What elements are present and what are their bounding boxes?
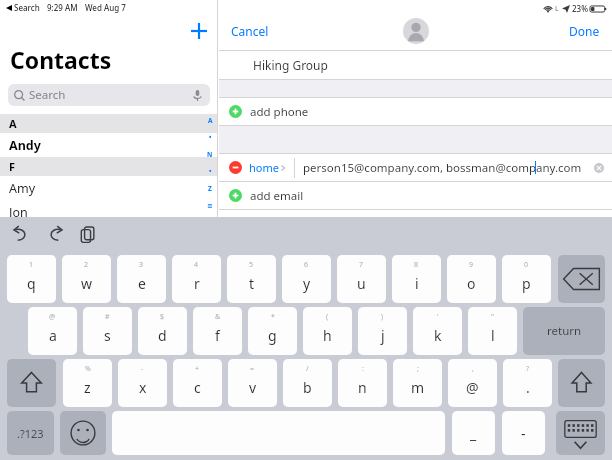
staticText: N xyxy=(207,150,213,159)
button[interactable]: _ xyxy=(452,411,495,455)
button[interactable]: 6 xyxy=(282,255,331,303)
staticText: / xyxy=(306,364,309,374)
button[interactable]: 3 xyxy=(117,255,166,303)
button[interactable]: 2 xyxy=(62,255,111,303)
button[interactable]: - xyxy=(502,411,545,455)
button[interactable]: Contact photo xyxy=(403,18,429,44)
staticText: r xyxy=(194,274,200,293)
staticText: F xyxy=(9,159,16,174)
button[interactable]: 5 xyxy=(227,255,276,303)
button[interactable]: Undo xyxy=(10,223,32,245)
staticText: p xyxy=(522,274,531,293)
button[interactable]: Shift xyxy=(558,359,605,407)
staticText: % xyxy=(85,364,91,374)
staticText: @ xyxy=(466,378,479,397)
staticText: m xyxy=(411,378,425,397)
button[interactable]: $ xyxy=(138,307,187,355)
staticText: add phone xyxy=(250,104,309,120)
staticText: ) xyxy=(381,312,384,322)
button[interactable]: / xyxy=(283,359,332,407)
staticText: - xyxy=(521,424,526,443)
button[interactable]: Done xyxy=(561,19,612,43)
button[interactable]: Cancel xyxy=(219,19,277,43)
staticText: Andy xyxy=(9,137,41,154)
button[interactable]: 4 xyxy=(172,255,221,303)
staticText: s xyxy=(104,326,111,345)
staticText: add email xyxy=(250,188,304,204)
button[interactable]: + xyxy=(173,359,222,407)
button[interactable]: Jon xyxy=(0,200,218,224)
staticText: " xyxy=(491,312,494,322)
button[interactable]: # xyxy=(83,307,132,355)
staticText: w xyxy=(81,274,93,293)
button[interactable]: * xyxy=(248,307,297,355)
button[interactable]: 0 xyxy=(502,255,551,303)
button[interactable]: : xyxy=(338,359,387,407)
staticText: 7 xyxy=(359,260,364,270)
button[interactable]: = xyxy=(228,359,277,407)
staticText: 5 xyxy=(249,260,254,270)
button[interactable]: Return xyxy=(523,307,605,355)
button[interactable]: 8 xyxy=(392,255,441,303)
button[interactable]: Redo xyxy=(44,223,66,245)
button[interactable]: & xyxy=(193,307,242,355)
button[interactable]: Amy xyxy=(0,176,218,200)
staticText: t xyxy=(249,274,255,293)
button[interactable]: ? xyxy=(503,359,552,407)
staticText: j xyxy=(381,326,385,345)
staticText: d xyxy=(158,326,167,345)
button[interactable]: Numbers xyxy=(7,411,54,455)
staticText: Search xyxy=(29,87,66,103)
button[interactable]: 9 xyxy=(447,255,496,303)
button[interactable]: Emoji xyxy=(60,411,106,455)
staticText: A xyxy=(208,116,213,125)
staticText: Hiking Group xyxy=(253,57,328,73)
staticText: Cancel xyxy=(231,23,269,39)
button[interactable]: Add contact xyxy=(186,18,212,44)
button[interactable]: @ xyxy=(28,307,77,355)
button[interactable]: Hiking Group xyxy=(219,51,612,79)
button[interactable]: Search xyxy=(8,84,210,106)
staticText: A xyxy=(9,116,17,131)
button[interactable]: 1 xyxy=(7,255,56,303)
staticText: ( xyxy=(326,312,329,322)
staticText: - xyxy=(141,364,144,374)
button[interactable]: Andy xyxy=(0,133,218,157)
staticText: 8 xyxy=(414,260,419,270)
button[interactable]: Shift xyxy=(7,359,56,407)
staticText: Contacts xyxy=(10,44,112,75)
button[interactable]: home xyxy=(219,154,612,181)
staticText: c xyxy=(194,378,201,397)
staticText: : xyxy=(362,364,364,374)
staticText: # xyxy=(105,312,110,322)
staticText: z xyxy=(84,378,91,397)
button[interactable]: Hide keyboard xyxy=(556,411,605,455)
staticText: * xyxy=(271,312,275,322)
button[interactable]: ( xyxy=(303,307,352,355)
staticText: $ xyxy=(160,312,165,322)
button[interactable]: " xyxy=(468,307,517,355)
button[interactable]: - xyxy=(118,359,167,407)
button[interactable]: add email xyxy=(219,182,612,209)
button[interactable]: 7 xyxy=(337,255,386,303)
button[interactable]: ) xyxy=(358,307,407,355)
staticText: + xyxy=(195,364,200,374)
staticText: ? xyxy=(526,364,530,374)
button[interactable]: , xyxy=(448,359,497,407)
button[interactable]: ; xyxy=(393,359,442,407)
staticText: y xyxy=(303,274,311,293)
staticText: v xyxy=(249,378,257,397)
staticText: 0 xyxy=(524,260,529,270)
staticText: Z xyxy=(208,184,212,193)
staticText: l xyxy=(491,326,495,345)
staticText: = xyxy=(250,364,255,374)
button[interactable]: Paste xyxy=(78,223,100,245)
button[interactable]: Delete xyxy=(558,255,605,303)
button[interactable]: add phone xyxy=(219,98,612,125)
staticText: 9:29 AM xyxy=(47,2,78,13)
staticText: i xyxy=(415,274,419,293)
button[interactable]: ' xyxy=(413,307,462,355)
button[interactable]: % xyxy=(63,359,112,407)
